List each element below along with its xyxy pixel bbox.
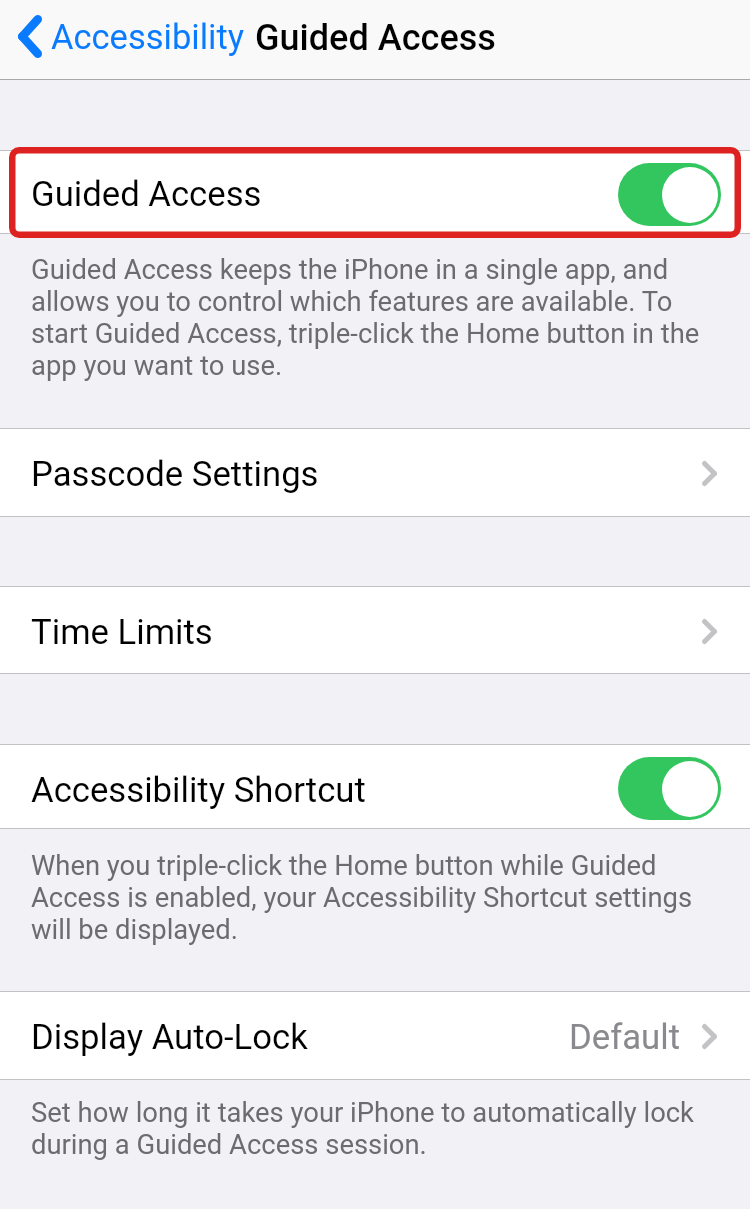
staticText: Passcode Settings	[31, 454, 319, 495]
staticText: When you triple-click the Home button wh…	[31, 850, 711, 946]
staticText: Guided Access keeps the iPhone in a sing…	[31, 254, 711, 382]
staticText: Accessibility Shortcut	[31, 770, 366, 811]
staticText: Accessibility	[51, 17, 245, 57]
button[interactable]: Back to Accessibility	[14, 5, 251, 61]
button[interactable]: Toggle, on	[618, 757, 721, 820]
staticText: Display Auto-Lock	[31, 1017, 308, 1058]
button[interactable]: Accessibility Shortcut	[0, 745, 750, 828]
staticText: Default	[569, 1017, 680, 1058]
button[interactable]: Time Limits	[0, 587, 750, 673]
button[interactable]: Guided Access	[0, 151, 750, 233]
staticText: Guided Access	[31, 174, 262, 215]
button[interactable]: Display Auto-Lock	[0, 992, 750, 1079]
staticText: Guided Access	[255, 17, 496, 59]
button[interactable]: Passcode Settings	[0, 429, 750, 516]
staticText: Time Limits	[31, 612, 213, 653]
button[interactable]: Toggle, on	[618, 163, 721, 226]
staticText: Set how long it takes your iPhone to aut…	[31, 1097, 711, 1161]
